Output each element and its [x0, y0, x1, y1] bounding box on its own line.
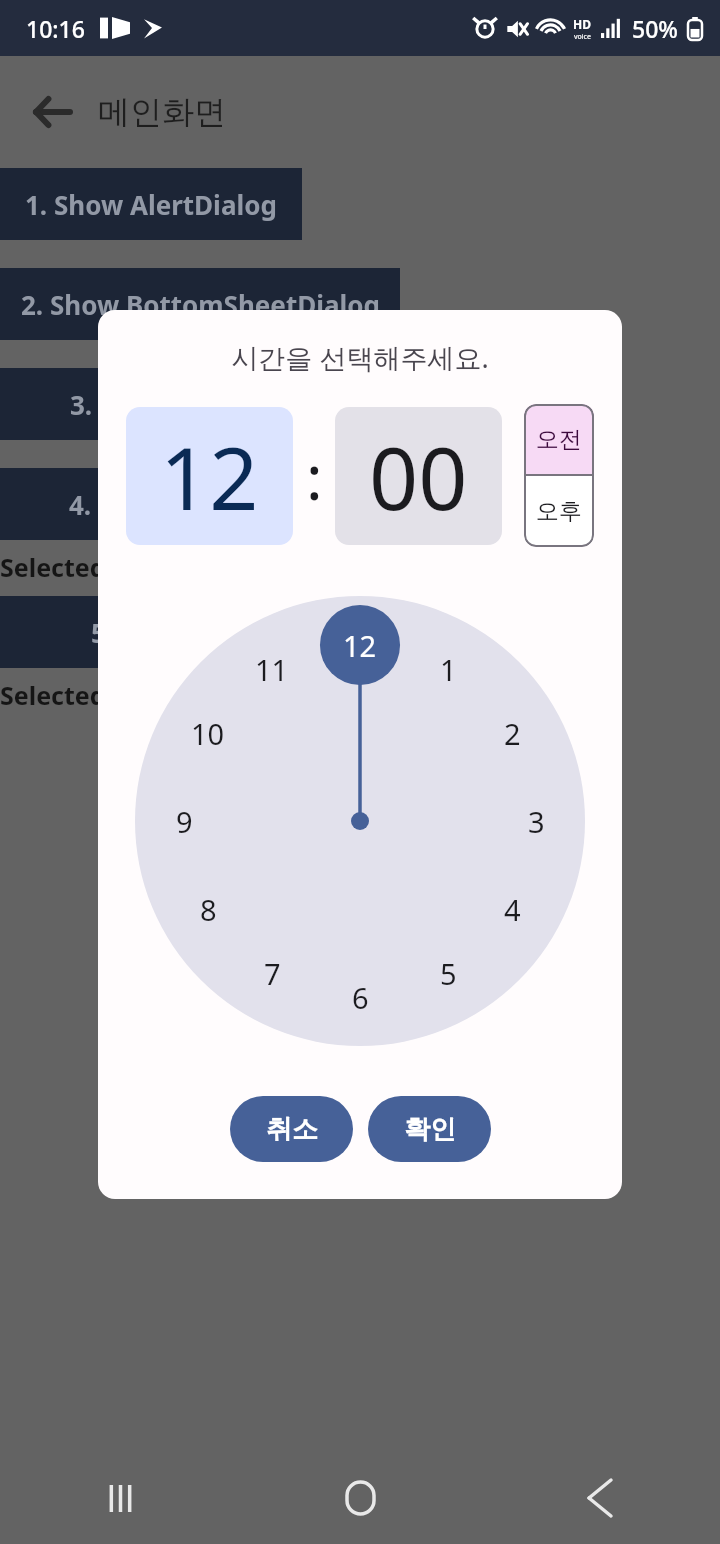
staticText: :	[306, 434, 323, 518]
staticText: 3	[528, 802, 545, 841]
button[interactable]: 2	[484, 705, 540, 761]
button[interactable]: 오전	[524, 404, 594, 474]
staticText: Selected :	[0, 550, 126, 584]
button[interactable]: 2. Show BottomSheetDialog	[0, 268, 400, 340]
button[interactable]: 00	[335, 407, 502, 545]
button[interactable]: 4. Show TimePickerDialog	[0, 468, 470, 540]
button[interactable]: 4	[484, 881, 540, 937]
button[interactable]: 7	[244, 945, 300, 1001]
button[interactable]: Recent apps	[0, 1452, 240, 1544]
staticText: 11	[255, 650, 289, 689]
staticText: 4. Show TimePickerDialog	[69, 487, 401, 522]
staticText: 4	[504, 890, 521, 929]
staticText: 2	[504, 714, 521, 753]
staticText: 3. Show DatePickerDialog	[70, 387, 400, 422]
staticText: 오전	[536, 425, 582, 454]
staticText: Selected :	[0, 678, 126, 712]
button[interactable]: 3. Show DatePickerDialog	[0, 368, 470, 440]
staticText: 2. Show BottomSheetDialog	[21, 287, 380, 322]
staticText: voice	[574, 32, 591, 42]
staticText: HD	[573, 16, 591, 32]
staticText: 6	[352, 978, 369, 1017]
staticText: 12	[160, 418, 259, 535]
button[interactable]: 12	[332, 617, 388, 673]
button[interactable]: Back	[480, 1452, 720, 1544]
staticText: 10:16	[26, 13, 85, 44]
staticText: 확인	[404, 1113, 456, 1146]
button[interactable]: 12	[126, 407, 293, 545]
button[interactable]: 8	[180, 881, 236, 937]
staticText: 8	[200, 890, 217, 929]
button[interactable]: Home	[240, 1452, 480, 1544]
button[interactable]: 1. Show AlertDialog	[0, 168, 302, 240]
staticText: 5. Show CustomDialog	[91, 615, 379, 650]
staticText: 메인화면	[98, 92, 226, 132]
staticText: 00	[369, 418, 468, 535]
button[interactable]: 오후	[524, 476, 594, 547]
button[interactable]: 1	[420, 641, 476, 697]
staticText: 5	[440, 954, 457, 993]
button[interactable]: 6	[332, 969, 388, 1025]
button[interactable]: Back	[26, 86, 78, 138]
button[interactable]: 확인	[368, 1096, 491, 1162]
button[interactable]: 취소	[230, 1096, 353, 1162]
staticText: 시간을 선택해주세요.	[231, 339, 489, 376]
staticText: 50%	[632, 13, 678, 44]
button[interactable]: 5	[420, 945, 476, 1001]
staticText: 10	[191, 714, 225, 753]
staticText: 12	[343, 626, 377, 665]
staticText: 1	[440, 650, 457, 689]
button[interactable]: 11	[244, 641, 300, 697]
staticText: 취소	[266, 1113, 318, 1146]
staticText: 1. Show AlertDialog	[25, 187, 277, 222]
button[interactable]: 3	[508, 793, 564, 849]
staticText: 9	[176, 802, 193, 841]
button[interactable]: 10	[180, 705, 236, 761]
staticText: 7	[264, 954, 281, 993]
staticText: 오후	[536, 497, 582, 526]
button[interactable]: 9	[156, 793, 212, 849]
button[interactable]: 5. Show CustomDialog	[0, 596, 470, 668]
